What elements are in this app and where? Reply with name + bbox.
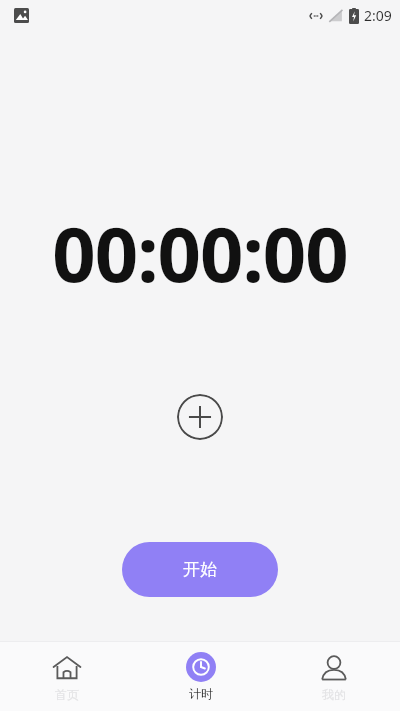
other: Timer <box>186 652 216 682</box>
button[interactable]: Profile <box>267 642 400 711</box>
staticText: 我的 <box>322 687 346 702</box>
staticText: 计时 <box>189 686 213 701</box>
staticText: 00:00:00 <box>52 201 348 305</box>
button[interactable]: Timer <box>134 642 267 711</box>
button[interactable]: 开始 <box>122 542 278 597</box>
other: Profile <box>318 652 350 684</box>
other: Home <box>51 652 83 684</box>
button[interactable]: Add lap <box>177 394 223 440</box>
staticText: 开始 <box>183 559 217 580</box>
button[interactable]: Home <box>0 642 134 711</box>
staticText: 首页 <box>55 687 79 702</box>
staticText: 2:09 <box>364 6 392 25</box>
